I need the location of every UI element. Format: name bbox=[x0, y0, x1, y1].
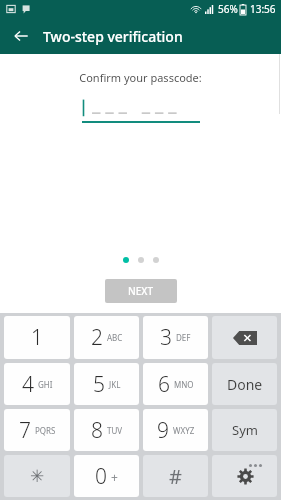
staticText: JKL bbox=[109, 379, 121, 390]
staticText: GHI bbox=[38, 379, 53, 390]
staticText: 7 bbox=[19, 416, 31, 445]
staticText: DEF bbox=[176, 332, 191, 343]
staticText: 4 bbox=[22, 370, 34, 399]
button[interactable]: Asterisk bbox=[4, 455, 70, 497]
staticText: Two-step verification bbox=[43, 27, 183, 46]
button[interactable]: 6 bbox=[143, 363, 208, 405]
button[interactable]: Backspace bbox=[212, 316, 277, 359]
staticText: 2 bbox=[91, 323, 103, 352]
staticText: PQRS bbox=[35, 425, 56, 436]
staticText: 0 bbox=[95, 462, 107, 491]
button[interactable]: Back bbox=[8, 23, 34, 49]
button[interactable]: 9 bbox=[143, 409, 208, 451]
button[interactable]: 4 bbox=[4, 363, 70, 405]
button[interactable]: 8 bbox=[74, 409, 139, 451]
button[interactable]: 3 bbox=[143, 316, 208, 359]
staticText: WXYZ bbox=[173, 425, 195, 436]
staticText: ✳ bbox=[30, 466, 45, 486]
button[interactable]: Done bbox=[212, 363, 277, 405]
button[interactable]: 1 bbox=[4, 316, 70, 359]
button[interactable]: 2 bbox=[74, 316, 139, 359]
staticText: # bbox=[169, 463, 182, 490]
staticText: 5 bbox=[93, 370, 105, 399]
staticText: Sym bbox=[232, 421, 258, 439]
staticText: 1 bbox=[31, 323, 43, 352]
button[interactable]: Hash bbox=[143, 455, 208, 497]
staticText: Done bbox=[227, 375, 263, 394]
staticText: 6 bbox=[158, 370, 170, 399]
staticText: MNO bbox=[174, 379, 194, 390]
button[interactable]: Sym bbox=[212, 409, 277, 451]
button[interactable]: 5 bbox=[74, 363, 139, 405]
staticText: 8 bbox=[91, 416, 103, 445]
staticText: TUV bbox=[107, 425, 123, 436]
staticText: 3 bbox=[160, 323, 172, 352]
staticText: 56% bbox=[218, 2, 238, 16]
staticText: + bbox=[111, 469, 118, 485]
button[interactable]: 0 bbox=[74, 455, 139, 497]
button[interactable]: Keyboard settings bbox=[212, 455, 277, 497]
staticText: Confirm your passcode: bbox=[79, 70, 202, 85]
staticText: ABC bbox=[107, 332, 123, 343]
button[interactable]: NEXT bbox=[105, 279, 177, 303]
button[interactable]: 7 bbox=[4, 409, 70, 451]
staticText: 13:56 bbox=[250, 2, 276, 16]
staticText: 9 bbox=[157, 416, 169, 445]
staticText: NEXT bbox=[128, 284, 154, 298]
